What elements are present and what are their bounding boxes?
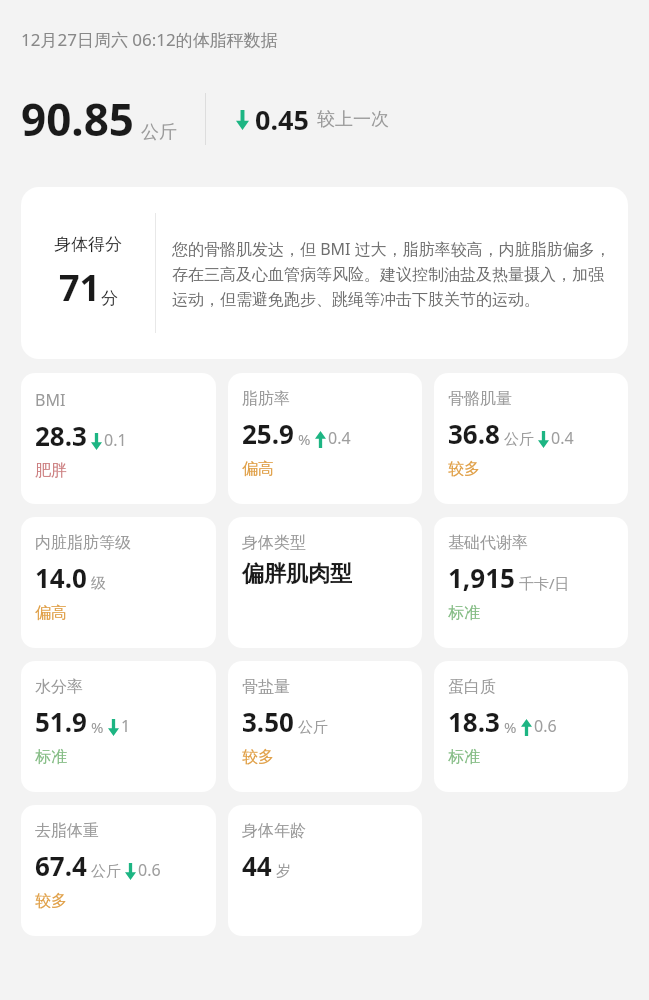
button[interactable]: 身体类型: [228, 517, 422, 648]
staticText: 0.6: [138, 859, 161, 881]
staticText: 36.8: [448, 416, 500, 451]
staticText: 蛋白质: [448, 677, 496, 697]
staticText: 51.9: [35, 704, 87, 739]
staticText: 去脂体重: [35, 821, 99, 841]
staticText: 0.45: [255, 101, 309, 138]
staticText: 25.9: [242, 416, 294, 451]
staticText: 千卡/日: [519, 573, 570, 593]
staticText: 水分率: [35, 677, 83, 697]
staticText: 偏高: [242, 459, 274, 479]
staticText: 您的骨骼肌发达，但 BMI 过大，脂肪率较高，内脏脂肪偏多，存在三高及心血管病等…: [172, 238, 614, 309]
staticText: 岁: [276, 862, 291, 881]
staticText: 公斤: [504, 430, 534, 449]
staticText: 18.3: [448, 704, 500, 739]
staticText: %: [504, 717, 517, 737]
button[interactable]: 去脂体重: [21, 805, 216, 936]
staticText: 1,915: [448, 560, 515, 595]
button[interactable]: 骨骼肌量: [434, 373, 628, 504]
staticText: 偏胖肌肉型: [242, 560, 352, 588]
staticText: 44: [242, 848, 272, 883]
button[interactable]: 水分率: [21, 661, 216, 792]
button[interactable]: 内脏脂肪等级: [21, 517, 216, 648]
staticText: 身体得分: [54, 234, 122, 255]
staticText: 14.0: [35, 560, 87, 595]
staticText: 较多: [35, 891, 67, 911]
button[interactable]: 基础代谢率: [434, 517, 628, 648]
staticText: 标准: [448, 603, 480, 623]
staticText: 脂肪率: [242, 389, 290, 409]
staticText: 较多: [242, 747, 274, 767]
staticText: 肥胖: [35, 461, 67, 481]
button[interactable]: 身体年龄: [228, 805, 422, 936]
staticText: BMI: [35, 389, 66, 411]
staticText: 骨盐量: [242, 677, 290, 697]
button[interactable]: 骨盐量: [228, 661, 422, 792]
staticText: 71: [59, 263, 101, 312]
staticText: 12月27日周六 06:12的体脂秤数据: [21, 28, 278, 51]
staticText: 公斤: [141, 121, 177, 144]
staticText: 公斤: [91, 862, 121, 881]
staticText: 0.6: [534, 715, 557, 737]
staticText: 0.4: [551, 427, 574, 449]
staticText: 28.3: [35, 418, 87, 453]
staticText: 67.4: [35, 848, 87, 883]
staticText: 分: [101, 288, 118, 309]
staticText: 3.50: [242, 704, 294, 739]
staticText: 标准: [35, 747, 67, 767]
button[interactable]: 脂肪率: [228, 373, 422, 504]
staticText: %: [298, 429, 311, 449]
staticText: 较多: [448, 459, 480, 479]
button[interactable]: BMI: [21, 373, 216, 504]
staticText: 骨骼肌量: [448, 389, 512, 409]
staticText: 基础代谢率: [448, 533, 528, 553]
button[interactable]: 身体得分: [21, 187, 628, 359]
staticText: 较上一次: [317, 108, 389, 131]
button[interactable]: 蛋白质: [434, 661, 628, 792]
staticText: %: [91, 717, 104, 737]
staticText: 身体年龄: [242, 821, 306, 841]
staticText: 级: [91, 574, 106, 593]
staticText: 偏高: [35, 603, 67, 623]
staticText: 0.4: [328, 427, 351, 449]
staticText: 90.85: [21, 89, 135, 149]
staticText: 标准: [448, 747, 480, 767]
staticText: 公斤: [298, 718, 328, 737]
staticText: 内脏脂肪等级: [35, 533, 131, 553]
staticText: 0.1: [104, 429, 127, 451]
staticText: 身体类型: [242, 533, 306, 553]
staticText: 1: [121, 715, 131, 737]
